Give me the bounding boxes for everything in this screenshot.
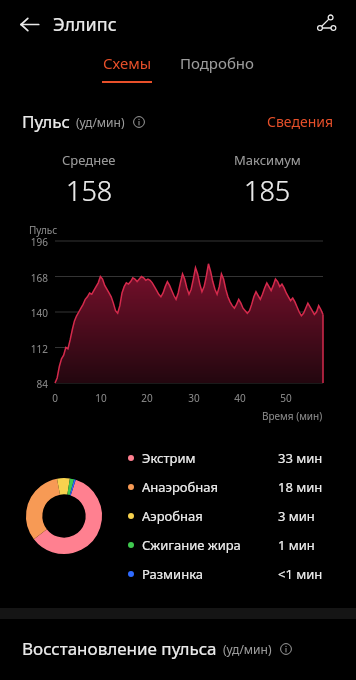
button[interactable]: Сжигание жира [128,530,340,559]
staticText: 1 мин [278,536,340,554]
staticText: 18 мин [278,478,340,496]
button[interactable]: Аэробная [128,501,340,530]
staticText: Аэробная [142,507,203,525]
staticText: 33 мин [278,449,340,467]
staticText: Схемы [103,53,152,73]
staticText: 140 [24,306,48,320]
staticText: Пульс [22,110,70,133]
button[interactable]: Схемы [94,48,160,88]
staticText: 168 [24,271,48,285]
staticText: Подробно [180,53,254,73]
staticText: 84 [24,377,48,391]
button[interactable]: Разминка [128,559,340,588]
staticText: Среднее [62,151,116,169]
staticText: 196 [24,235,48,249]
staticText: Максимум [234,151,301,169]
staticText: Анаэробная [142,478,219,496]
staticText: <1 мин [278,565,340,583]
staticText: 3 мин [278,507,340,525]
button[interactable]: Back [10,5,48,43]
button[interactable]: Info [278,641,293,656]
staticText: 20 [137,391,157,405]
staticText: (уд/мин) [76,114,125,130]
staticText: Сведения [267,112,334,131]
staticText: 158 [66,172,113,209]
staticText: 10 [91,391,111,405]
staticText: Время (мин) [262,409,323,423]
staticText: (уд/мин) [223,641,272,657]
button[interactable]: Подробно [172,48,262,78]
staticText: Сжигание жира [142,536,241,554]
staticText: Пульс [29,223,58,237]
button[interactable]: Анаэробная [128,472,340,501]
button[interactable]: Экстрим [128,443,340,472]
staticText: Разминка [142,565,204,583]
staticText: Эллипс [53,12,117,37]
staticText: 185 [244,172,291,209]
button[interactable]: Share [308,5,346,43]
staticText: 112 [24,342,48,356]
staticText: 50 [276,391,296,405]
staticText: 0 [45,391,65,405]
staticText: Восстановление пульса [22,637,217,660]
button[interactable]: Info [131,114,146,129]
staticText: 40 [230,391,250,405]
staticText: Экстрим [142,449,196,467]
button[interactable]: Сведения [263,108,338,135]
staticText: 30 [184,391,204,405]
